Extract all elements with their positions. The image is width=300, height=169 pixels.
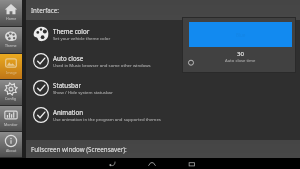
staticText: Auto close time bbox=[225, 58, 256, 64]
button[interactable]: Animation bbox=[26, 101, 300, 128]
button[interactable]: Config bbox=[0, 80, 22, 106]
button[interactable]: Home bbox=[0, 0, 22, 27]
button[interactable]: Theme color bbox=[26, 20, 300, 47]
staticText: Set your vehicle theme color bbox=[53, 35, 111, 41]
button[interactable]: About bbox=[0, 132, 22, 158]
staticText: Fullscreen window (Screensaver): bbox=[31, 145, 127, 153]
staticText: Interface: bbox=[31, 6, 59, 14]
button[interactable]: Auto close bbox=[26, 47, 300, 74]
button[interactable]: Recent apps bbox=[182, 158, 202, 169]
button[interactable]: Statusbar bbox=[26, 74, 300, 101]
staticText: Config bbox=[5, 96, 17, 101]
staticText: Auto close bbox=[53, 54, 84, 62]
button[interactable]: Back bbox=[102, 158, 122, 169]
staticText: Monitor bbox=[4, 122, 18, 127]
button[interactable]: Monitor bbox=[0, 106, 22, 132]
staticText: Used in Music browser and some other win… bbox=[53, 62, 151, 68]
button[interactable]: Theme bbox=[0, 27, 22, 54]
staticText: About bbox=[6, 148, 17, 153]
staticText: Theme color bbox=[53, 27, 90, 35]
staticText: Show / Hide system statusbar bbox=[53, 89, 113, 95]
staticText: 30 bbox=[237, 50, 244, 58]
button[interactable]: Image bbox=[0, 54, 22, 80]
staticText: Image bbox=[6, 70, 17, 75]
button[interactable]: Home bbox=[142, 158, 162, 169]
staticText: Home bbox=[6, 16, 17, 21]
staticText: Theme bbox=[5, 43, 17, 48]
staticText: Use animation in the program and support… bbox=[53, 116, 161, 122]
staticText: Statusbar bbox=[53, 81, 81, 89]
staticText: Animation bbox=[53, 108, 84, 116]
